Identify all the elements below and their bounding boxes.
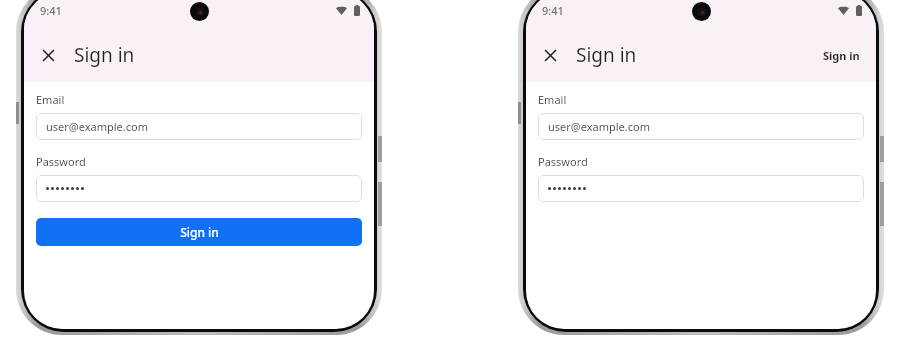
button[interactable]: Sign in xyxy=(813,42,870,69)
button[interactable] xyxy=(538,175,864,202)
button[interactable]: Close xyxy=(28,35,68,75)
staticText: user@example.com xyxy=(46,119,148,134)
staticText: user@example.com xyxy=(548,119,650,134)
button[interactable]: Sign in xyxy=(36,218,362,246)
staticText: 9:41 xyxy=(40,3,62,18)
button[interactable]: user@example.com xyxy=(538,113,864,140)
button[interactable]: Close xyxy=(530,35,570,75)
staticText: Sign in xyxy=(576,42,637,68)
staticText: Sign in xyxy=(180,224,219,240)
staticText: 9:41 xyxy=(542,3,564,18)
staticText: Sign in xyxy=(74,42,135,68)
staticText: Password xyxy=(36,154,86,169)
staticText: Email xyxy=(538,92,567,107)
button[interactable] xyxy=(36,175,362,202)
staticText: Password xyxy=(538,154,588,169)
button[interactable]: user@example.com xyxy=(36,113,362,140)
staticText: Sign in xyxy=(823,48,860,63)
staticText: Email xyxy=(36,92,65,107)
